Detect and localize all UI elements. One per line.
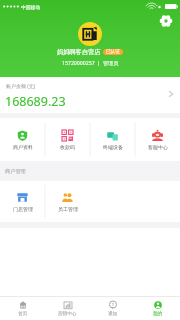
staticText: 已认证 — [106, 49, 120, 55]
button[interactable]: 商户资料 — [0, 118, 45, 161]
button[interactable]: 收款码 — [45, 118, 90, 161]
button[interactable]: 门店管理 — [0, 181, 45, 222]
staticText: 终端设备 — [103, 144, 123, 150]
staticText: 中国移动 — [21, 4, 41, 10]
staticText: 妈妈啊客自营店 — [57, 48, 101, 56]
staticText: 商户管理 — [5, 168, 26, 175]
staticText: 通知 — [108, 311, 118, 317]
button[interactable]: 员工管理 — [45, 181, 90, 222]
staticText: 收款码 — [60, 144, 75, 150]
button[interactable]: Settings — [160, 15, 172, 27]
staticText: 账户余额 (元) — [6, 83, 36, 90]
button[interactable]: 客服中心 — [135, 118, 180, 161]
staticText: 客服中心 — [148, 144, 168, 150]
button[interactable]: 首页 — [0, 297, 45, 320]
button[interactable]: 终端设备 — [90, 118, 135, 161]
staticText: 员工管理 — [58, 206, 78, 212]
button[interactable]: 账户余额 (元) — [0, 77, 180, 113]
button[interactable]: 营销中心 — [45, 297, 90, 320]
staticText: 我的 — [153, 311, 163, 317]
staticText: 商户资料 — [13, 144, 33, 150]
button[interactable]: 通知 — [90, 297, 135, 320]
button[interactable]: 我的 — [135, 297, 180, 320]
staticText: 15720000257 | 管理员 — [62, 59, 119, 66]
staticText: 门店管理 — [13, 206, 33, 212]
staticText: 首页 — [18, 311, 28, 317]
staticText: 营销中心 — [58, 311, 77, 317]
staticText: 168689.23 — [5, 93, 66, 110]
